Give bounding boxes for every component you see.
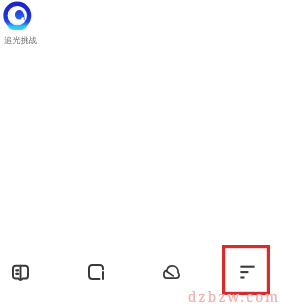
button[interactable]: 追光挑战 — [3, 1, 33, 31]
button[interactable]: Cloud — [163, 265, 180, 279]
button[interactable]: Reading — [12, 264, 29, 281]
button[interactable]: Recents — [88, 264, 104, 280]
button[interactable]: List — [238, 263, 256, 281]
staticText: 追光挑战 — [1, 35, 40, 45]
staticText: dzbzw.com — [188, 288, 281, 306]
